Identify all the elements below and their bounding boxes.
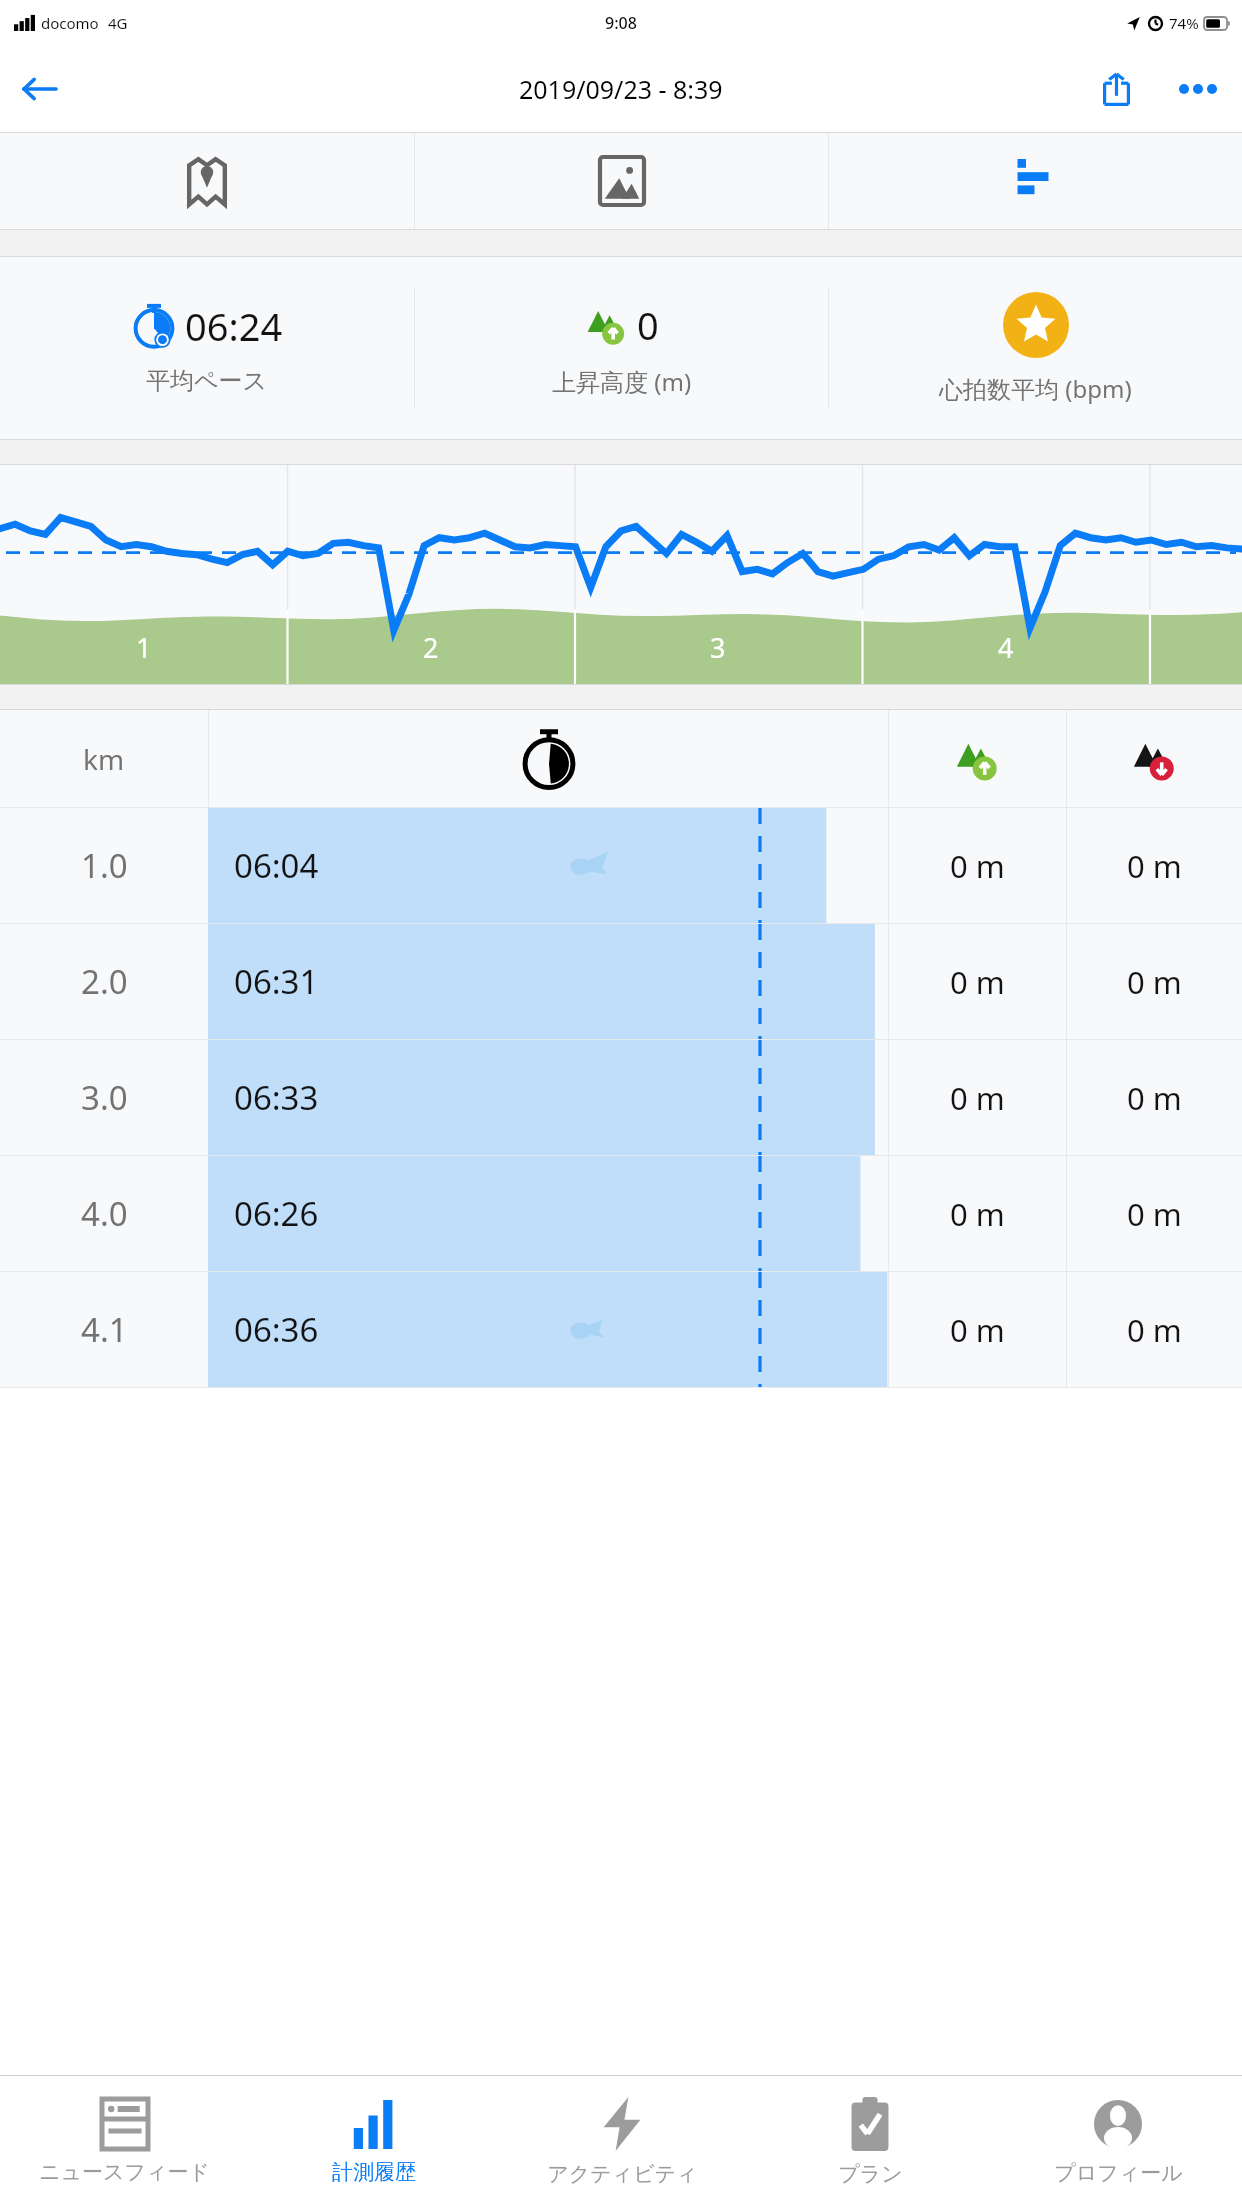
staticText: 0 m: [1127, 961, 1182, 1003]
staticText: 74%: [1169, 13, 1199, 33]
staticText: 3.0: [81, 1075, 128, 1120]
button[interactable]: 3.0: [0, 1040, 1242, 1155]
staticText: 2019/09/23 - 8:39: [519, 72, 723, 106]
staticText: 上昇高度 (m): [552, 365, 692, 398]
staticText: 4: [998, 629, 1014, 666]
staticText: 0 m: [950, 1077, 1005, 1119]
button[interactable]: 1.0: [0, 808, 1242, 923]
staticText: 1: [136, 629, 152, 666]
staticText: 4.1: [81, 1307, 128, 1352]
button[interactable]: Photos: [415, 133, 828, 229]
staticText: 4.0: [81, 1191, 128, 1236]
staticText: 0 m: [950, 845, 1005, 887]
button[interactable]: 0: [415, 257, 828, 439]
button[interactable]: 計測履歴: [249, 2076, 498, 2208]
button[interactable]: 2.0: [0, 924, 1242, 1039]
button[interactable]: Share: [1086, 59, 1146, 119]
staticText: 0 m: [1127, 845, 1182, 887]
button[interactable]: プロフィール: [994, 2076, 1242, 2208]
button[interactable]: 06:24: [0, 257, 414, 439]
staticText: 0 m: [1127, 1309, 1182, 1351]
button[interactable]: プラン: [746, 2076, 994, 2208]
button[interactable]: Stats: [829, 133, 1242, 229]
staticText: 06:26: [234, 1191, 319, 1236]
staticText: 06:31: [234, 959, 319, 1004]
staticText: 平均ペース: [146, 366, 268, 396]
staticText: 0 m: [950, 961, 1005, 1003]
staticText: 2: [423, 629, 439, 666]
button[interactable]: 4.0: [0, 1156, 1242, 1271]
staticText: 0 m: [1127, 1193, 1182, 1235]
staticText: 2.0: [81, 959, 128, 1004]
staticText: アクティビティ: [547, 2161, 698, 2187]
staticText: 0 m: [950, 1193, 1005, 1235]
staticText: 計測履歴: [332, 2159, 416, 2185]
button[interactable]: More options: [1168, 59, 1228, 119]
staticText: 9:08: [605, 12, 637, 34]
staticText: 06:24: [185, 300, 283, 352]
staticText: 3: [710, 629, 726, 666]
staticText: 06:04: [234, 843, 319, 888]
button[interactable]: 4.1: [0, 1272, 1242, 1387]
staticText: 0: [637, 299, 659, 351]
staticText: 06:36: [234, 1307, 319, 1352]
staticText: プロフィール: [1054, 2160, 1183, 2186]
staticText: 0 m: [950, 1309, 1005, 1351]
staticText: プラン: [838, 2161, 903, 2187]
staticText: docomo: [41, 13, 99, 33]
button[interactable]: 心拍数平均 (bpm): [829, 257, 1242, 439]
button[interactable]: アクティビティ: [498, 2076, 746, 2208]
button[interactable]: Map: [0, 133, 414, 229]
staticText: 1.0: [81, 843, 128, 888]
staticText: km: [83, 740, 125, 778]
staticText: 心拍数平均 (bpm): [939, 372, 1132, 405]
staticText: 0 m: [1127, 1077, 1182, 1119]
staticText: ニュースフィード: [39, 2159, 210, 2185]
staticText: 4G: [108, 13, 128, 33]
staticText: 06:33: [234, 1075, 319, 1120]
button[interactable]: Back: [10, 60, 68, 118]
button[interactable]: ニュースフィード: [0, 2076, 249, 2208]
